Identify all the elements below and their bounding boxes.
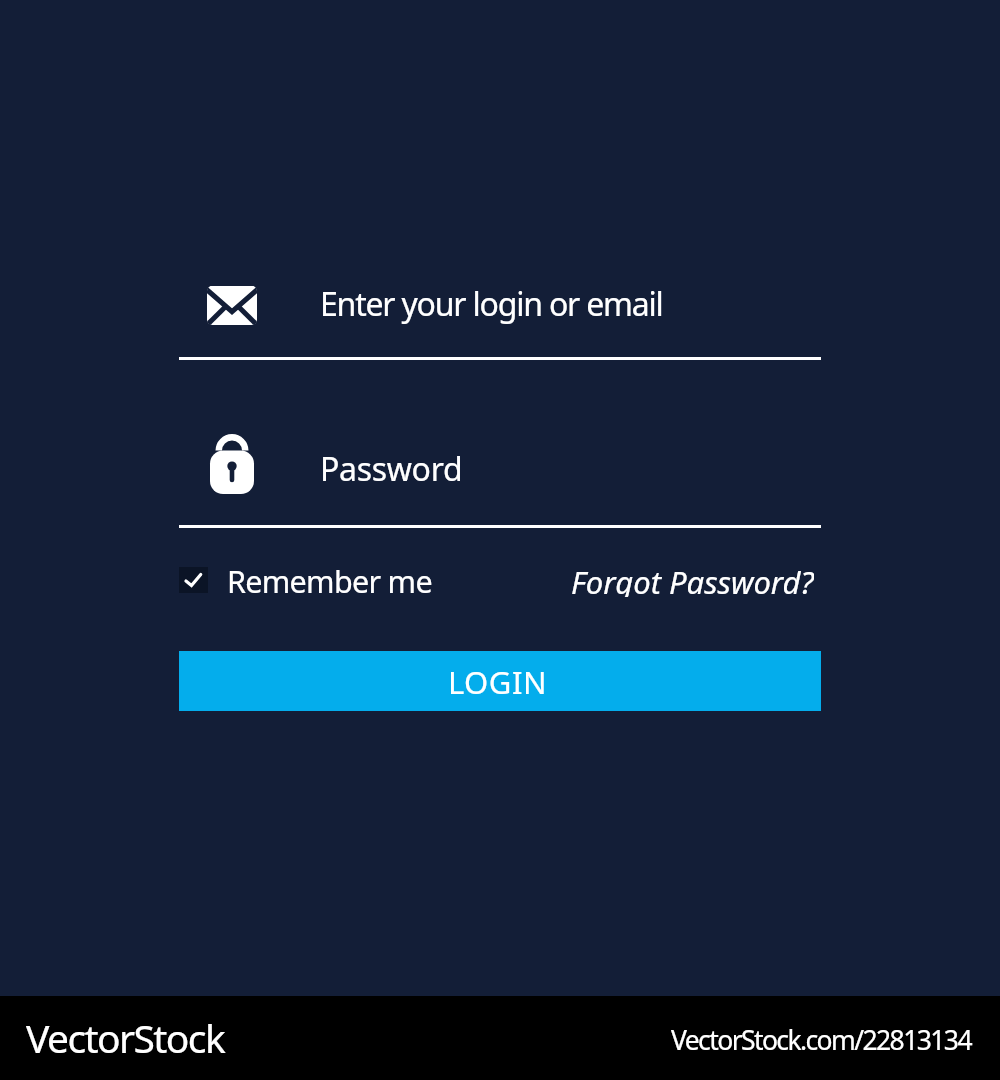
staticText: Enter your login or email — [320, 282, 663, 326]
staticText: Forgot Password? — [571, 561, 814, 597]
staticText: Remember me — [227, 560, 432, 596]
button[interactable]: LOGIN — [179, 651, 821, 711]
button[interactable]: Password — [179, 430, 821, 528]
button[interactable]: Enter your login or email — [179, 268, 821, 360]
staticText: LOGIN — [448, 661, 547, 703]
staticText: Password — [320, 447, 463, 491]
staticText: VectorStock — [26, 1011, 225, 1064]
button[interactable]: Forgot Password? — [548, 563, 814, 599]
button[interactable]: Remember me — [179, 563, 479, 599]
staticText: VectorStock.com/22813134 — [671, 1022, 971, 1058]
